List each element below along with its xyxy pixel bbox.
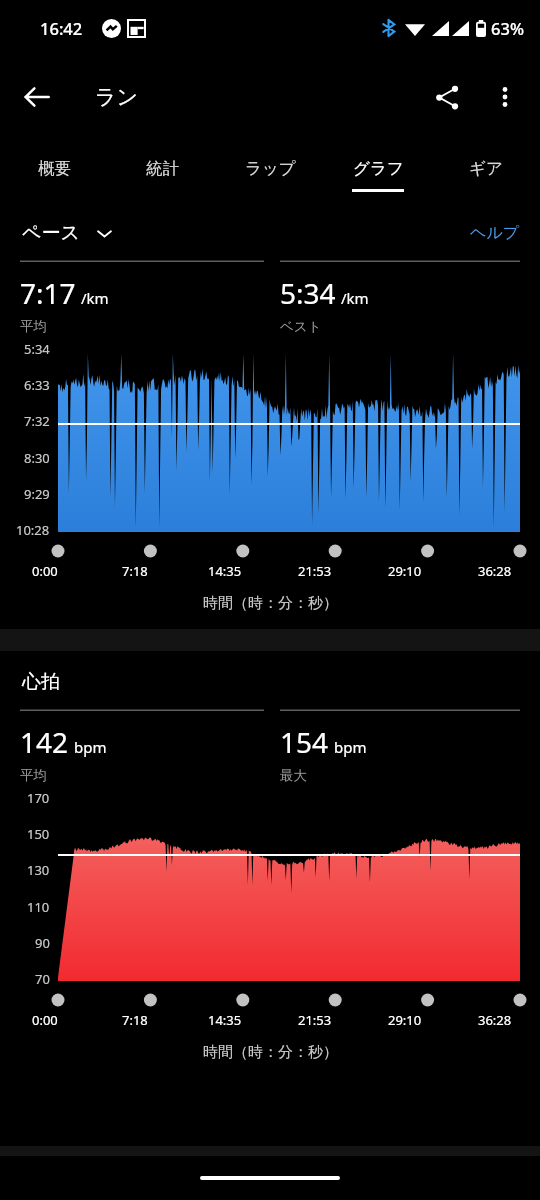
- staticText: 170: [27, 789, 50, 807]
- button[interactable]: Share: [418, 68, 476, 126]
- staticText: 7:17: [20, 274, 76, 312]
- staticText: 130: [27, 861, 50, 879]
- button[interactable]: ギア: [432, 138, 540, 200]
- staticText: 最大: [280, 767, 307, 784]
- staticText: ラップ: [245, 158, 296, 179]
- staticText: ベスト: [280, 318, 322, 335]
- staticText: ギア: [469, 158, 503, 179]
- staticText: 36:28: [478, 1011, 512, 1029]
- staticText: ヘルプ: [470, 223, 520, 243]
- staticText: 10:28: [16, 521, 50, 539]
- staticText: 8:30: [24, 449, 50, 467]
- staticText: 心拍: [22, 670, 60, 694]
- staticText: 統計: [146, 158, 179, 179]
- button[interactable]: 統計: [108, 138, 216, 200]
- staticText: 7:32: [24, 412, 50, 430]
- button[interactable]: ヘルプ: [466, 217, 524, 249]
- staticText: 14:35: [208, 562, 242, 580]
- staticText: 21:53: [298, 562, 332, 580]
- staticText: /km: [341, 288, 369, 308]
- staticText: 0:00: [32, 562, 58, 580]
- staticText: bpm: [74, 737, 107, 757]
- staticText: 0:00: [32, 1011, 58, 1029]
- staticText: 平均: [20, 767, 47, 784]
- staticText: 70: [35, 970, 50, 988]
- staticText: 21:53: [298, 1011, 332, 1029]
- staticText: グラフ: [353, 158, 404, 179]
- staticText: ペース: [22, 221, 80, 245]
- staticText: 概要: [38, 158, 71, 179]
- staticText: ラン: [95, 84, 138, 110]
- staticText: 16:42: [40, 17, 83, 39]
- staticText: 6:33: [24, 376, 50, 394]
- staticText: 63%: [491, 17, 524, 39]
- staticText: bpm: [334, 737, 367, 757]
- button[interactable]: Back: [9, 69, 65, 125]
- staticText: 36:28: [478, 562, 512, 580]
- staticText: 5:34: [24, 340, 50, 358]
- staticText: 150: [27, 825, 50, 843]
- button[interactable]: 概要: [0, 138, 108, 200]
- staticText: 110: [27, 898, 50, 916]
- button[interactable]: グラフ: [324, 138, 432, 200]
- staticText: 29:10: [388, 562, 422, 580]
- staticText: /km: [81, 288, 109, 308]
- staticText: 142: [20, 723, 69, 761]
- staticText: 29:10: [388, 1011, 422, 1029]
- button[interactable]: More options: [476, 68, 534, 126]
- staticText: 5:34: [280, 274, 336, 312]
- button[interactable]: ペース: [20, 215, 115, 251]
- staticText: 時間（時：分：秒）: [203, 1043, 338, 1062]
- staticText: 7:18: [122, 1011, 148, 1029]
- staticText: 154: [280, 723, 329, 761]
- staticText: 平均: [20, 318, 47, 335]
- staticText: 7:18: [122, 562, 148, 580]
- staticText: 9:29: [24, 485, 50, 503]
- staticText: 90: [35, 934, 50, 952]
- button[interactable]: ラップ: [216, 138, 324, 200]
- staticText: 時間（時：分：秒）: [203, 594, 338, 613]
- staticText: 14:35: [208, 1011, 242, 1029]
